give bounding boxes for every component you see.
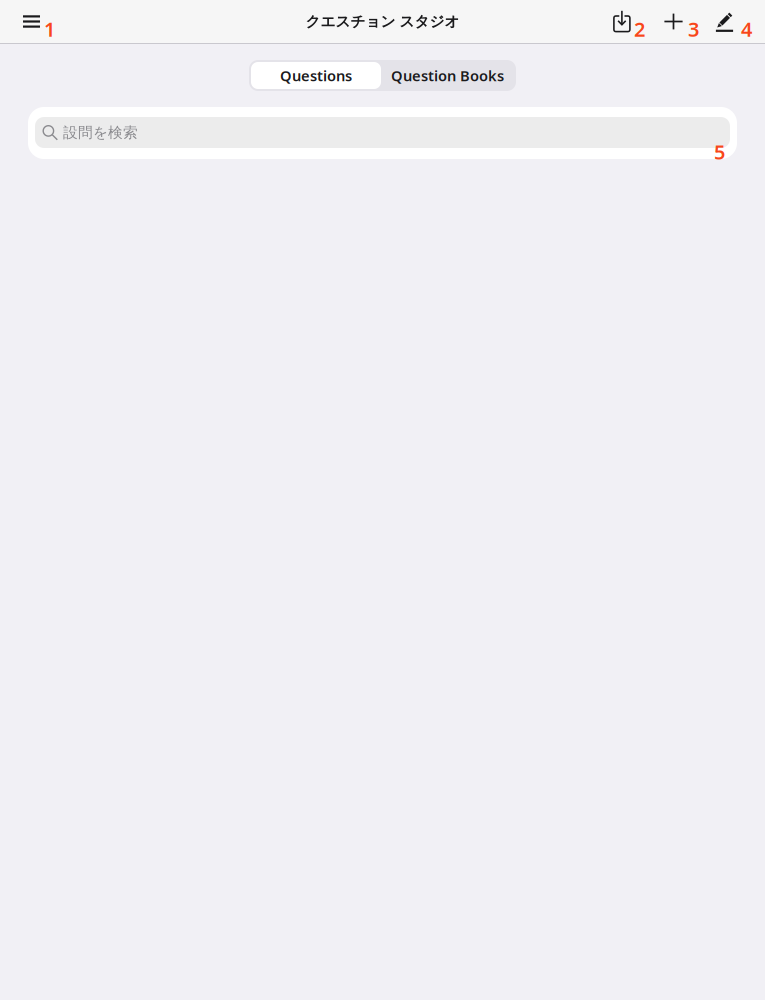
- button[interactable]: Edit: [699, 0, 741, 43]
- button[interactable]: 設問を検索: [35, 117, 730, 148]
- staticText: 3: [688, 16, 699, 42]
- staticText: 1: [44, 16, 55, 42]
- staticText: クエスチョン スタジオ: [305, 12, 459, 30]
- staticText: 設問を検索: [63, 123, 138, 141]
- button[interactable]: Menu: [0, 0, 44, 43]
- staticText: Question Books: [391, 66, 504, 85]
- button[interactable]: Questions: [251, 62, 381, 89]
- staticText: 4: [741, 16, 752, 42]
- staticText: 2: [634, 16, 645, 42]
- button[interactable]: Question Books: [381, 62, 514, 89]
- staticText: 5: [714, 138, 725, 165]
- staticText: Questions: [280, 66, 352, 85]
- button[interactable]: Import: [613, 0, 634, 43]
- button[interactable]: Add: [645, 0, 688, 43]
